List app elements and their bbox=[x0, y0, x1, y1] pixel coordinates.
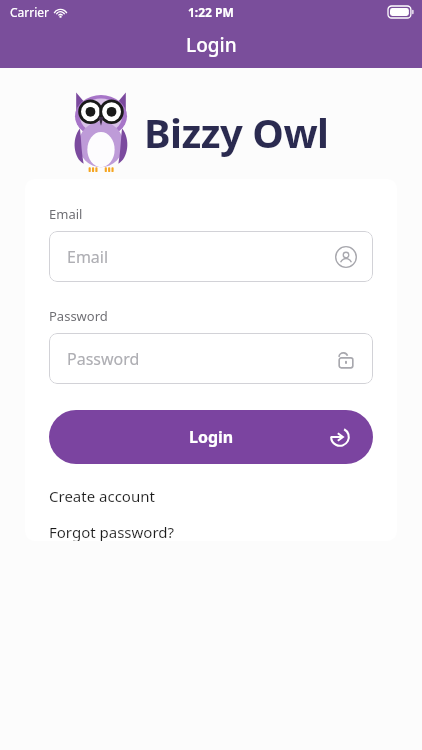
staticText: Password bbox=[49, 307, 108, 325]
staticText: Email bbox=[49, 205, 83, 223]
button[interactable]: Password bbox=[49, 333, 373, 384]
staticText: Create account bbox=[49, 486, 155, 506]
staticText: Email bbox=[67, 246, 109, 268]
button[interactable]: Create account bbox=[49, 486, 373, 506]
staticText: Login bbox=[186, 32, 237, 58]
button[interactable]: Forgot password? bbox=[49, 522, 373, 541]
staticText: Carrier bbox=[10, 4, 50, 20]
staticText: Login bbox=[189, 426, 234, 448]
button[interactable]: Email bbox=[49, 231, 373, 282]
staticText: Forgot password? bbox=[49, 522, 175, 541]
staticText: Bizzy Owl bbox=[144, 105, 329, 159]
staticText: 1:22 PM bbox=[188, 4, 234, 20]
button[interactable]: Login bbox=[49, 410, 373, 464]
staticText: Password bbox=[67, 348, 140, 370]
